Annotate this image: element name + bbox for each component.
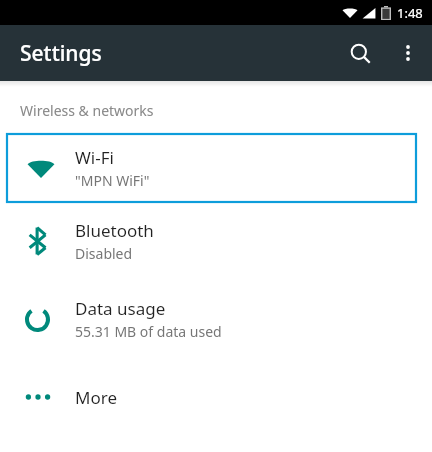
button[interactable]: More options bbox=[384, 29, 432, 77]
staticText: More bbox=[75, 386, 117, 409]
staticText: Wireless & networks bbox=[20, 101, 154, 120]
staticText: Data usage bbox=[75, 297, 166, 320]
staticText: Disabled bbox=[75, 244, 133, 263]
staticText: Settings bbox=[20, 39, 102, 68]
button[interactable]: More bbox=[0, 358, 432, 436]
staticText: Bluetooth bbox=[75, 219, 154, 242]
staticText: "MPN WiFi" bbox=[75, 171, 150, 190]
button[interactable]: Data usage bbox=[0, 280, 432, 358]
button[interactable]: Search bbox=[336, 29, 384, 77]
staticText: 55.31 MB of data used bbox=[75, 322, 222, 341]
button[interactable]: Wi-Fi bbox=[7, 134, 416, 202]
staticText: 1:48 bbox=[397, 4, 423, 22]
staticText: Wi-Fi bbox=[75, 146, 114, 169]
button[interactable]: Bluetooth bbox=[0, 202, 432, 280]
